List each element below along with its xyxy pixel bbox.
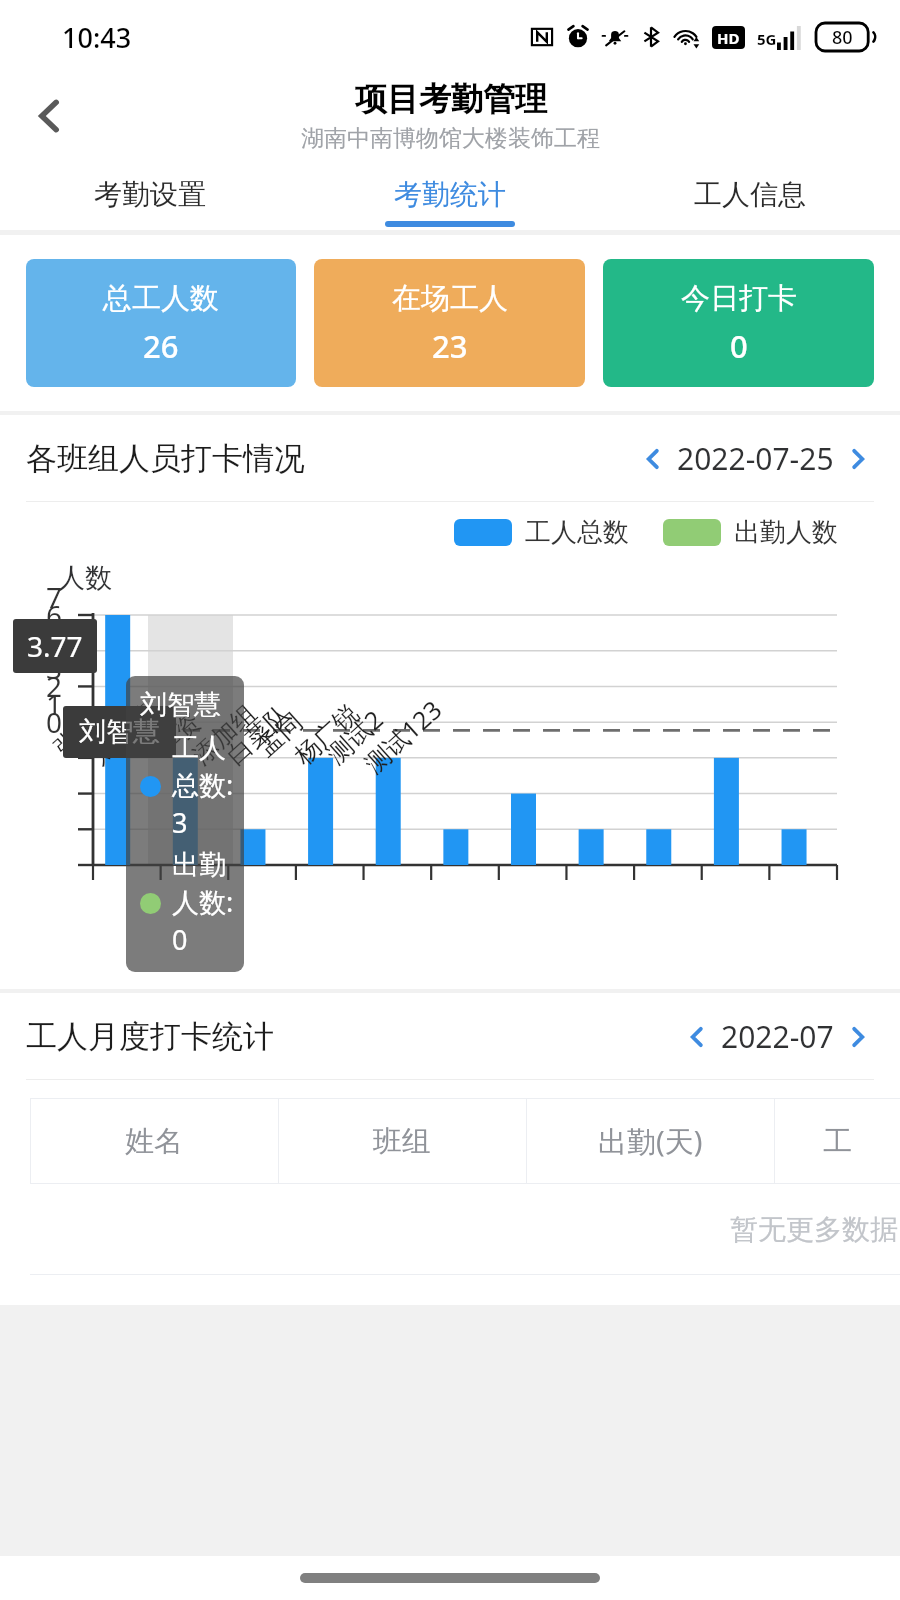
staticText: 5 xyxy=(46,614,63,652)
staticText: 李资 xyxy=(149,706,207,763)
staticText: 添加组 xyxy=(186,698,263,771)
button[interactable]: Previous xyxy=(681,1012,874,1061)
button[interactable]: Previous xyxy=(637,434,874,483)
staticText: 工人总数 xyxy=(525,516,629,549)
staticText: 3 xyxy=(46,649,63,687)
staticText: 工人月度打卡统计 xyxy=(26,1017,274,1056)
button[interactable]: 总工人数 xyxy=(26,259,296,387)
staticText: 白菜队 xyxy=(220,698,297,771)
staticText: 6 xyxy=(46,596,63,634)
other: Previous xyxy=(641,447,665,471)
other: Previous xyxy=(685,1025,709,1049)
staticText: 考勤设置 xyxy=(94,177,206,212)
staticText: 刘智慧 xyxy=(79,715,160,749)
staticText: 3.77 xyxy=(27,627,83,665)
staticText: 2022-07 xyxy=(721,1016,834,1057)
staticText: 2022-07-25 xyxy=(677,438,834,479)
staticText: 26 xyxy=(143,325,179,367)
button[interactable]: 考勤统计 xyxy=(300,158,600,230)
staticText: 在场工人 xyxy=(392,280,508,317)
staticText: 工人总数: 3 xyxy=(172,731,234,841)
staticText: 4 xyxy=(46,632,63,670)
staticText: 工人信息 xyxy=(694,177,806,212)
staticText: 10:43 xyxy=(62,19,132,56)
staticText: 杨凡 xyxy=(116,706,174,763)
staticText: 测试2 xyxy=(319,702,390,770)
staticText: 出勤(天) xyxy=(598,1121,703,1161)
staticText: 班组 xyxy=(373,1123,431,1160)
button[interactable]: 在场工人 xyxy=(314,259,585,387)
staticText: 23 xyxy=(432,325,468,367)
staticText: 5G xyxy=(757,29,777,49)
staticText: 出勤人数: 0 xyxy=(172,848,234,958)
staticText: 项目考勤管理 xyxy=(355,79,547,119)
button[interactable]: 工人信息 xyxy=(600,158,900,230)
staticText: 0 xyxy=(46,703,63,741)
staticText: 张杰 xyxy=(48,706,106,763)
button[interactable]: 考勤设置 xyxy=(0,158,300,230)
staticText: 考勤统计 xyxy=(394,177,506,212)
other: Next xyxy=(846,1025,870,1049)
staticText: 1 xyxy=(46,685,63,723)
staticText: 刘智慧 xyxy=(85,698,162,771)
staticText: 暂无更多数据 xyxy=(730,1212,898,1247)
staticText: 湖南中南博物馆大楼装饰工程 xyxy=(301,124,600,153)
staticText: 孟同 xyxy=(251,706,309,763)
staticText: 0 xyxy=(730,325,748,367)
staticText: 姓名 xyxy=(125,1123,183,1160)
staticText: 杨广锐 xyxy=(288,698,365,771)
staticText: 各班组人员打卡情况 xyxy=(26,439,305,478)
staticText: 人数 xyxy=(58,561,112,595)
button[interactable]: 今日打卡 xyxy=(603,259,874,387)
staticText: 总工人数 xyxy=(103,280,219,317)
staticText: 刘智慧 xyxy=(140,688,221,722)
button[interactable]: Back xyxy=(20,87,78,145)
other: Next xyxy=(846,447,870,471)
staticText: 今日打卡 xyxy=(681,280,797,317)
staticText: 测试123 xyxy=(357,692,448,780)
staticText: 出勤人数 xyxy=(734,516,838,549)
staticText: 80 xyxy=(832,25,853,50)
staticText: HD xyxy=(717,28,740,48)
staticText: 2 xyxy=(46,667,63,705)
staticText: 7 xyxy=(46,578,63,616)
staticText: 工 xyxy=(823,1123,852,1160)
